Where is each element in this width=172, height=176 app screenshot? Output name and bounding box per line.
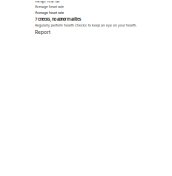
staticText: Average heart rate	[35, 5, 64, 9]
staticText: Average heart rate	[35, 0, 60, 3]
staticText: Report	[35, 29, 51, 35]
staticText: Regularly perform health checks to keep …	[35, 24, 137, 27]
staticText: 7 checks, no abnormalities	[35, 17, 81, 22]
staticText: Average heart rate	[35, 11, 64, 15]
